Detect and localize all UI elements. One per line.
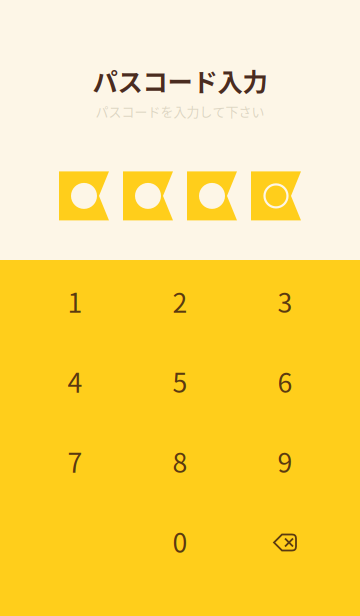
staticText: 7 (67, 442, 82, 480)
staticText: パスコード入力 (92, 62, 267, 99)
staticText: 1 (67, 282, 82, 320)
button[interactable]: 9 (232, 421, 337, 501)
staticText: パスコードを入力して下さい (95, 102, 264, 120)
button[interactable]: 5 (127, 341, 232, 421)
button[interactable]: 8 (127, 421, 232, 501)
staticText: 8 (172, 442, 187, 480)
button[interactable]: 2 (127, 261, 232, 341)
staticText: 2 (172, 282, 187, 320)
button[interactable]: 6 (232, 341, 337, 421)
staticText: 4 (67, 362, 82, 400)
button[interactable]: 4 (22, 341, 127, 421)
button[interactable]: 1 (22, 261, 127, 341)
button[interactable]: 3 (232, 261, 337, 341)
button[interactable]: Delete (232, 501, 337, 581)
button[interactable]: 0 (127, 501, 232, 581)
staticText: 5 (172, 362, 187, 400)
staticText: 0 (172, 522, 187, 560)
staticText: 6 (277, 362, 292, 400)
button[interactable]: 7 (22, 421, 127, 501)
staticText: 3 (277, 282, 292, 320)
staticText: 9 (277, 442, 292, 480)
